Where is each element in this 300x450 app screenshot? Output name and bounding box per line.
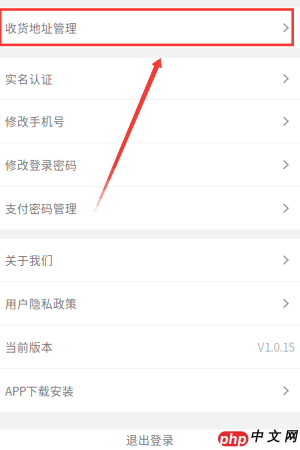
button[interactable]: 退出登录: [0, 429, 300, 450]
staticText: 退出登录: [126, 431, 174, 448]
staticText: 当前版本: [5, 338, 53, 355]
button[interactable]: 关于我们: [0, 239, 300, 282]
button[interactable]: 支付密码管理: [0, 187, 300, 230]
staticText: 修改登录密码: [5, 156, 77, 173]
button[interactable]: 修改登录密码: [0, 143, 300, 187]
button[interactable]: 收货地址管理: [0, 7, 300, 48]
staticText: 修改手机号: [5, 113, 65, 130]
staticText: 收货地址管理: [5, 19, 77, 36]
button[interactable]: 实名认证: [0, 58, 300, 100]
button[interactable]: 修改手机号: [0, 100, 300, 143]
staticText: V1.0.15: [257, 338, 294, 355]
button[interactable]: 当前版本: [0, 325, 300, 369]
staticText: php: [220, 430, 247, 447]
staticText: APP下载安装: [5, 382, 74, 399]
staticText: 实名认证: [5, 70, 53, 87]
staticText: 用户隐私政策: [5, 295, 77, 312]
button[interactable]: 用户隐私政策: [0, 282, 300, 325]
staticText: 中文网: [250, 428, 297, 445]
button[interactable]: APP下载安装: [0, 369, 300, 412]
staticText: 支付密码管理: [5, 200, 77, 217]
staticText: 关于我们: [5, 252, 53, 268]
